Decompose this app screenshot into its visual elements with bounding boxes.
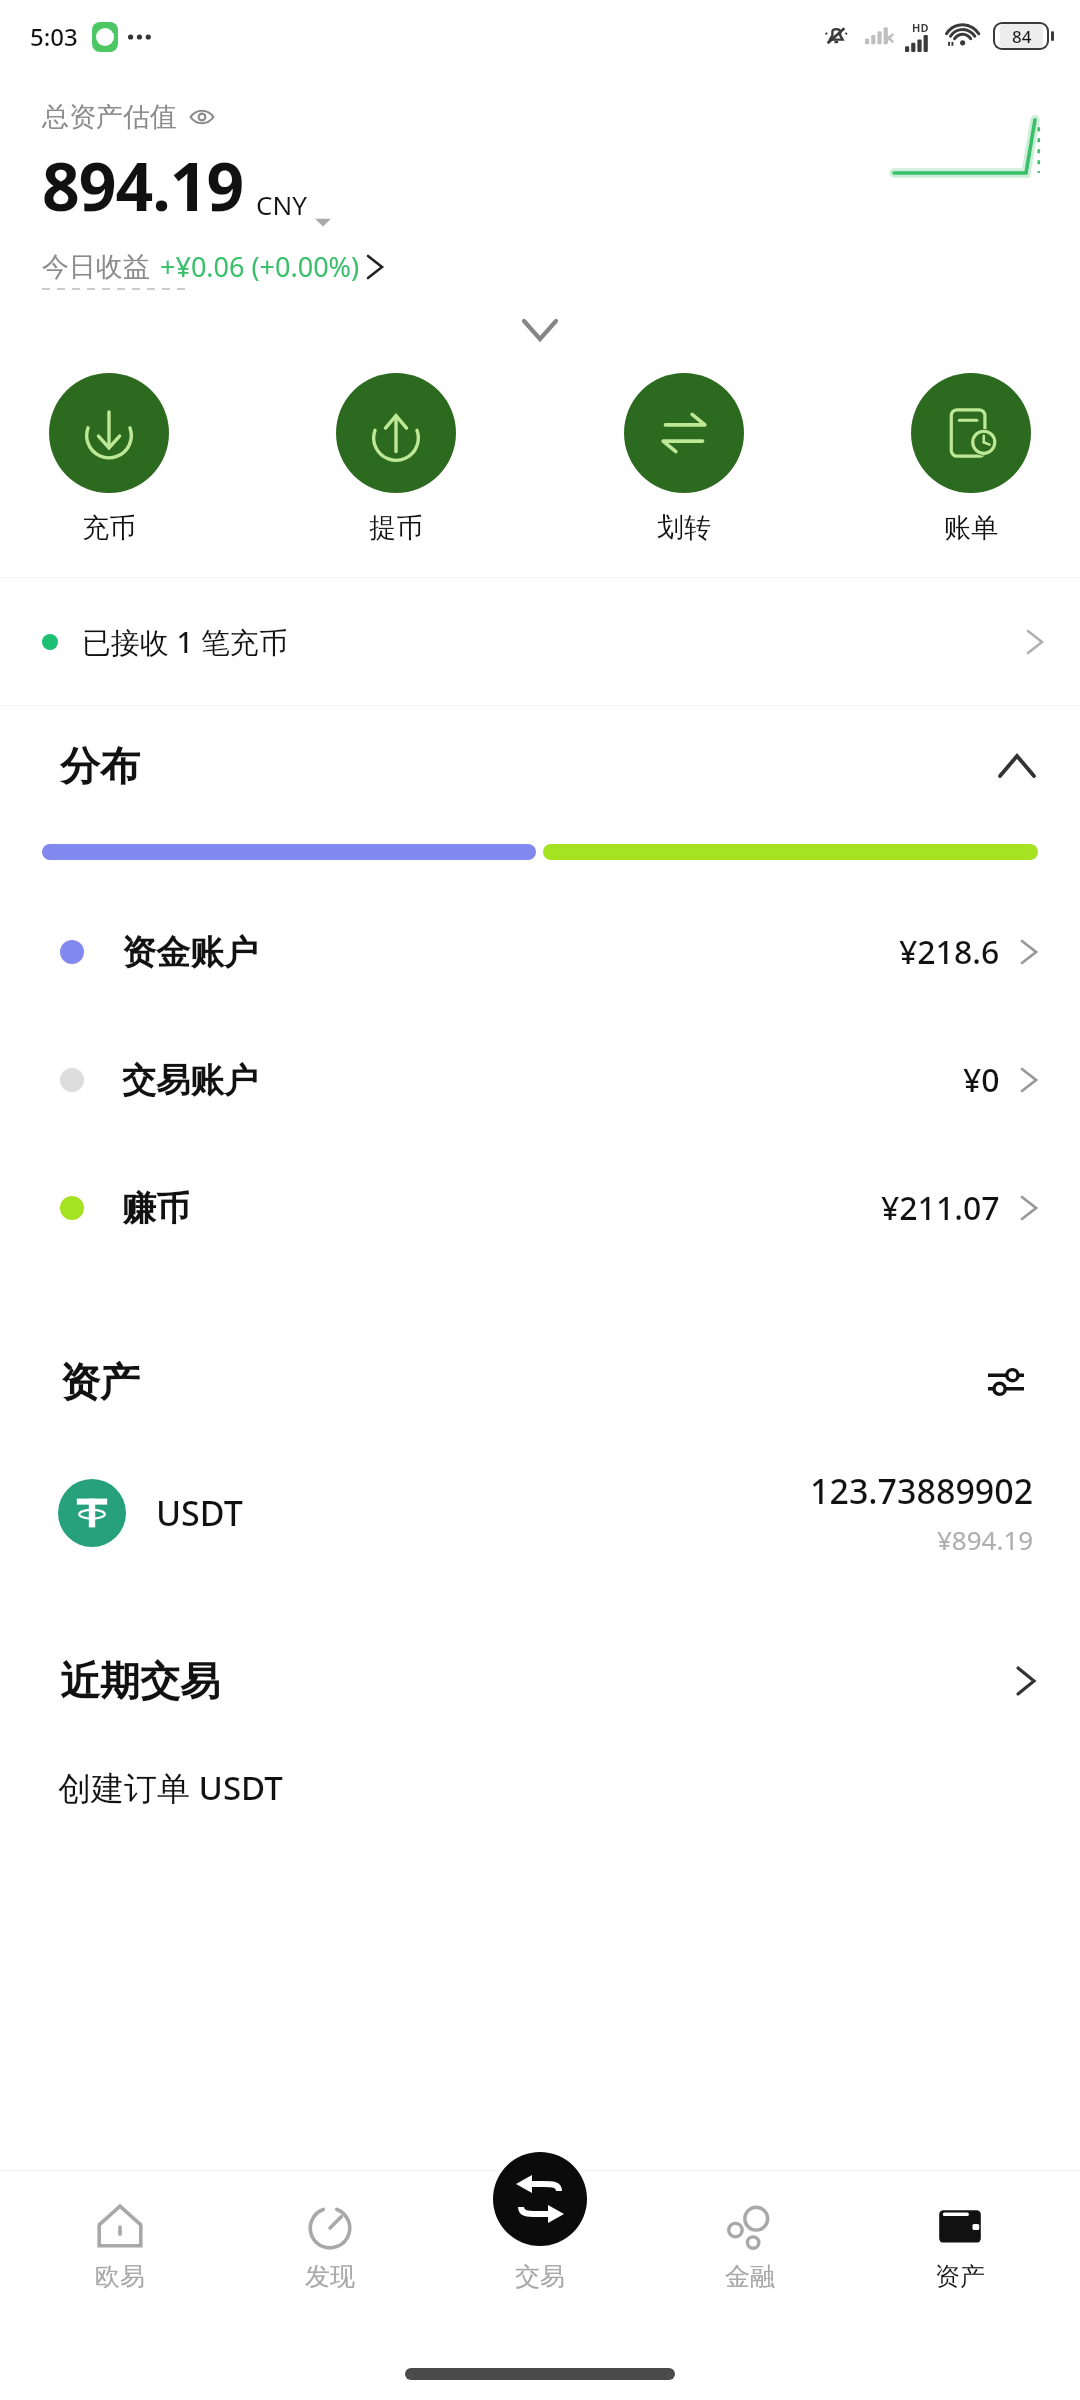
staticText: 划转: [657, 511, 711, 545]
staticText: 123.73889902: [810, 1468, 1034, 1514]
staticText: 84: [1012, 25, 1032, 48]
staticText: 资金账户: [122, 931, 258, 974]
other: Toggle visibility: [189, 104, 215, 130]
staticText: +¥0.06 (+0.00%): [160, 248, 360, 285]
staticText: 发现: [305, 2261, 355, 2292]
button[interactable]: 金融: [660, 2193, 840, 2298]
button[interactable]: 已接收 1 笔充币: [0, 578, 1080, 705]
button[interactable]: 总资产估值: [42, 100, 215, 134]
button[interactable]: 欧易: [30, 2193, 210, 2298]
staticText: ¥0: [963, 1058, 1000, 1102]
button[interactable]: 894.19: [42, 140, 331, 230]
staticText: USDT: [156, 1490, 243, 1536]
other: Collapse distribution: [1000, 756, 1034, 776]
button[interactable]: 近期交易: [0, 1627, 1080, 1735]
button[interactable]: Collapse: [505, 295, 575, 365]
button[interactable]: 账单: [896, 369, 1046, 549]
staticText: 提币: [369, 511, 423, 545]
staticText: 分布: [60, 741, 140, 791]
staticText: ¥211.07: [881, 1186, 1000, 1230]
button[interactable]: 提币: [321, 369, 471, 549]
button[interactable]: 资产: [870, 2193, 1050, 2298]
staticText: 资产: [935, 2261, 985, 2292]
button[interactable]: 分布: [0, 706, 1080, 826]
staticText: 充币: [82, 511, 136, 545]
staticText: 金融: [725, 2261, 775, 2292]
staticText: 近期交易: [60, 1656, 220, 1706]
staticText: 资产: [60, 1357, 140, 1407]
button[interactable]: Trade: [493, 2152, 587, 2246]
staticText: ¥218.6: [899, 930, 1000, 974]
button[interactable]: 交易: [450, 2193, 630, 2298]
button[interactable]: Filter assets: [978, 1354, 1034, 1410]
staticText: 总资产估值: [42, 100, 177, 134]
staticText: 账单: [944, 511, 998, 545]
staticText: 创建订单 USDT: [58, 1765, 283, 1810]
button[interactable]: 发现: [240, 2193, 420, 2298]
staticText: 894.19: [42, 140, 244, 230]
staticText: CNY: [256, 187, 307, 222]
button[interactable]: 赚币: [0, 1144, 1080, 1272]
button[interactable]: 划转: [609, 369, 759, 549]
button[interactable]: 今日收益: [42, 248, 382, 285]
staticText: ¥894.19: [937, 1522, 1034, 1557]
staticText: 欧易: [95, 2261, 145, 2292]
staticText: 交易: [515, 2261, 565, 2292]
staticText: HD: [912, 20, 929, 35]
button[interactable]: 充币: [34, 369, 184, 549]
button[interactable]: 交易账户: [0, 1016, 1080, 1144]
staticText: 今日收益: [42, 250, 150, 284]
staticText: 交易账户: [122, 1059, 258, 1102]
button[interactable]: 资金账户: [0, 888, 1080, 1016]
staticText: 已接收 1 笔充币: [82, 622, 288, 662]
staticText: 赚币: [122, 1187, 190, 1230]
staticText: 5:03: [30, 20, 78, 53]
button[interactable]: USDT: [0, 1468, 1080, 1557]
